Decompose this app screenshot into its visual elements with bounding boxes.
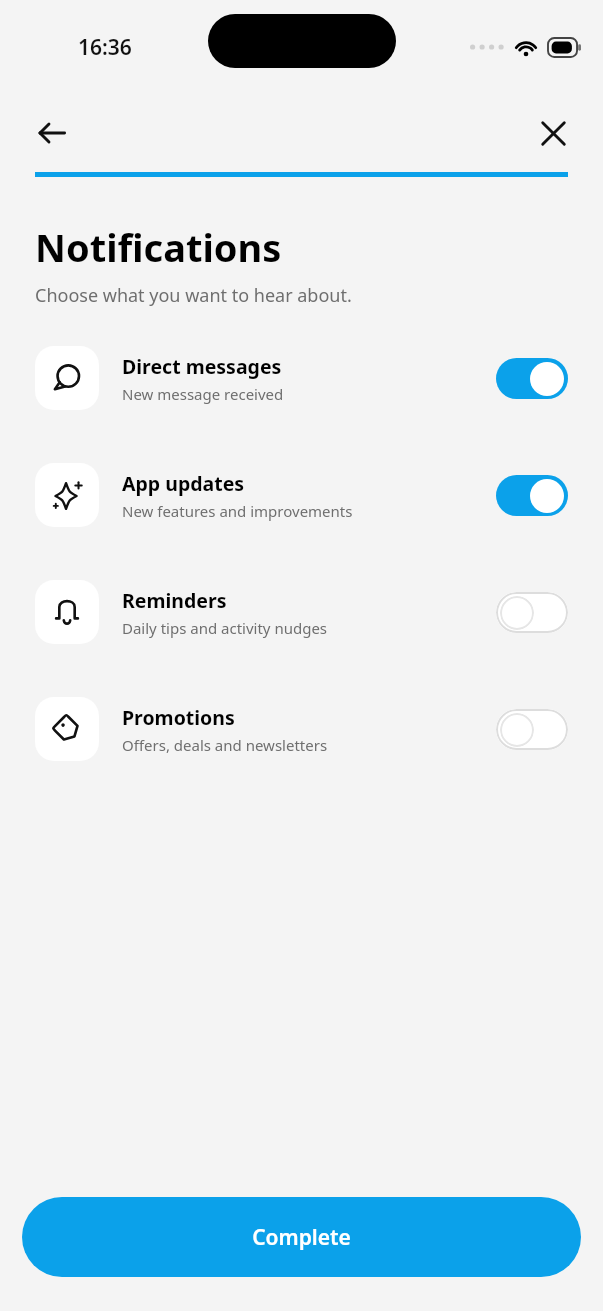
staticText: Direct messages [122, 353, 282, 380]
button[interactable]: Off [496, 709, 568, 750]
staticText: 16:36 [78, 33, 132, 62]
button[interactable]: Back [24, 105, 80, 161]
staticText: Promotions [122, 704, 235, 731]
staticText: New features and improvements [122, 501, 353, 521]
button[interactable]: On [496, 358, 568, 399]
staticText: Choose what you want to hear about. [35, 283, 352, 308]
staticText: Complete [252, 1223, 351, 1252]
staticText: App updates [122, 470, 245, 497]
staticText: Daily tips and activity nudges [122, 618, 328, 638]
button[interactable]: Direct messages [35, 346, 568, 410]
button[interactable]: Complete [22, 1197, 581, 1277]
button[interactable]: Promotions [35, 697, 568, 761]
staticText: Notifications [35, 221, 282, 273]
button[interactable]: App updates [35, 463, 568, 527]
staticText: Offers, deals and newsletters [122, 735, 328, 755]
button[interactable]: Reminders [35, 580, 568, 644]
button[interactable]: Off [496, 592, 568, 633]
staticText: Reminders [122, 587, 227, 614]
staticText: New message received [122, 384, 284, 404]
button[interactable]: Close [525, 105, 581, 161]
button[interactable]: On [496, 475, 568, 516]
